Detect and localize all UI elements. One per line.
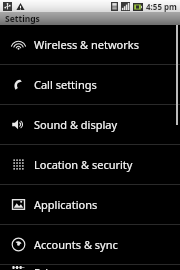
- button[interactable]: Wireless & networks: [0, 25, 180, 64]
- staticText: Wireless & networks: [34, 37, 139, 52]
- staticText: Applications: [34, 197, 98, 212]
- staticText: Call settings: [34, 77, 97, 92]
- button[interactable]: Sound & display: [0, 105, 180, 144]
- button[interactable]: Applications: [0, 185, 180, 224]
- staticText: 4:55 pm: [146, 1, 177, 12]
- button[interactable]: Call settings: [0, 65, 180, 104]
- button[interactable]: Privacy: [0, 265, 180, 270]
- staticText: Privacy: [34, 265, 71, 270]
- staticText: Location & security: [34, 157, 133, 172]
- staticText: Accounts & sync: [34, 237, 118, 252]
- staticText: Sound & display: [34, 117, 118, 132]
- button[interactable]: Location & security: [0, 145, 180, 184]
- staticText: Settings: [5, 13, 40, 25]
- button[interactable]: Accounts & sync: [0, 225, 180, 264]
